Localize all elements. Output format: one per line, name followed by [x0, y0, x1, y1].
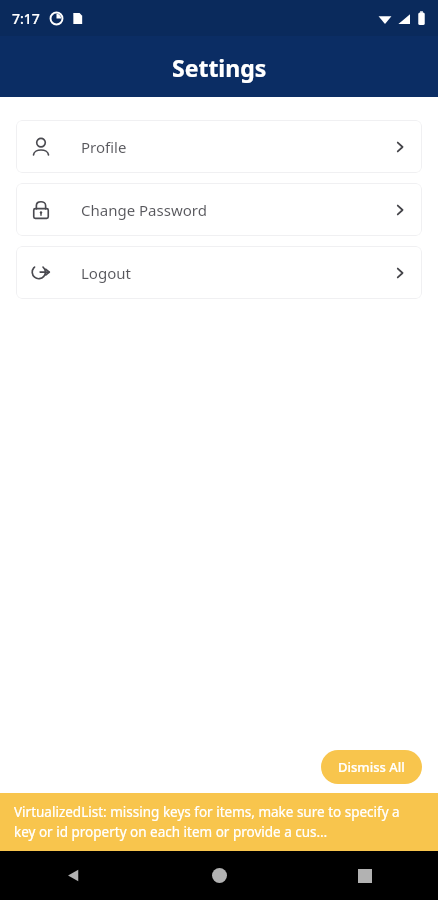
staticText: 7:17: [12, 9, 40, 28]
staticText: VirtualizedList: missing keys for items,…: [14, 803, 424, 841]
button[interactable]: Dismiss All: [321, 750, 422, 784]
button[interactable]: Back: [0, 851, 146, 900]
staticText: Change Password: [81, 200, 207, 220]
button[interactable]: Recents: [292, 851, 438, 900]
button[interactable]: Profile: [16, 120, 422, 173]
staticText: Dismiss All: [338, 758, 405, 776]
staticText: Logout: [81, 263, 131, 283]
button[interactable]: Logout: [16, 246, 422, 299]
button[interactable]: Change Password: [16, 183, 422, 236]
button[interactable]: VirtualizedList: missing keys for items,…: [0, 793, 438, 851]
button[interactable]: Home: [146, 851, 292, 900]
staticText: Profile: [81, 137, 127, 157]
staticText: Settings: [172, 52, 267, 83]
